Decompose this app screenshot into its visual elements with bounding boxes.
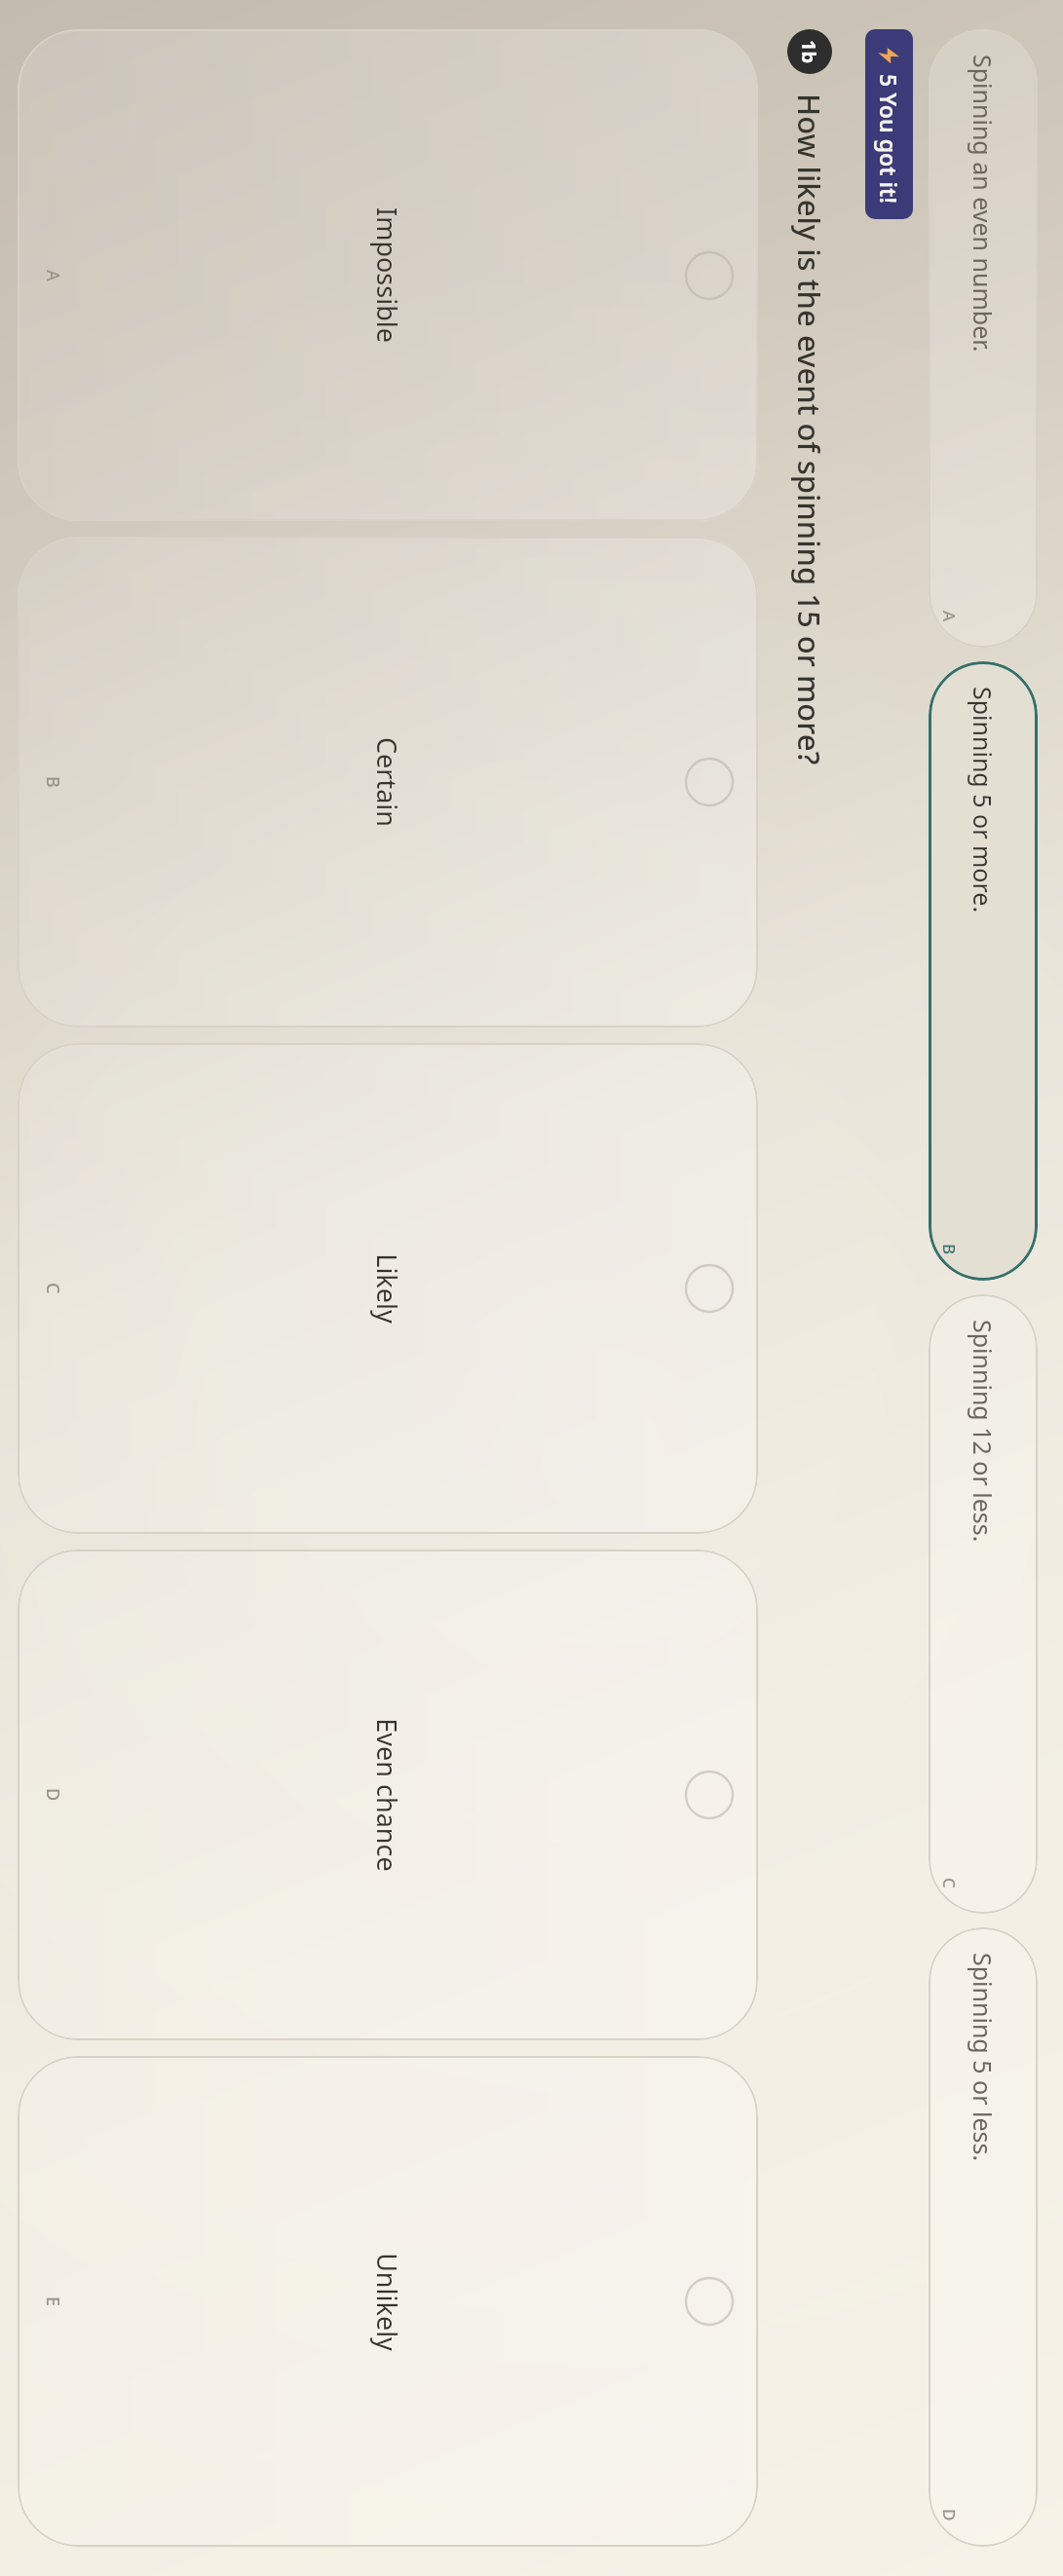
button[interactable]: Likely	[18, 1043, 758, 1534]
staticText: D	[938, 2509, 961, 2521]
staticText: Spinning 5 or less.	[967, 1953, 1000, 2162]
staticText: Impossible	[369, 207, 405, 343]
staticText: Spinning 5 or more.	[967, 687, 1000, 914]
button[interactable]: Spinning an even number.	[929, 29, 1038, 648]
staticText: C	[938, 1878, 961, 1888]
staticText: E	[41, 2296, 65, 2307]
button[interactable]: Unlikely	[18, 2056, 758, 2547]
staticText: C	[41, 1283, 65, 1294]
button[interactable]: 5 You got it!	[865, 29, 913, 219]
staticText: Unlikely	[369, 2253, 405, 2351]
button[interactable]: 1b	[787, 29, 832, 74]
staticText: Certain	[369, 737, 405, 827]
staticText: Spinning 12 or less.	[967, 1320, 1000, 1543]
staticText: Likely	[369, 1253, 405, 1324]
button[interactable]: Spinning 5 or less.	[929, 1927, 1038, 2547]
staticText: How likely is the event of spinning 15 o…	[789, 93, 830, 765]
button[interactable]: Even chance	[18, 1549, 758, 2040]
button[interactable]: Spinning 5 or more.	[929, 661, 1038, 1281]
staticText: 1b	[796, 40, 822, 64]
button[interactable]: Certain	[18, 537, 758, 1027]
staticText: Spinning an even number.	[967, 55, 1000, 353]
staticText: B	[41, 776, 65, 788]
staticText: B	[938, 1244, 961, 1255]
staticText: D	[41, 1788, 65, 1802]
button[interactable]: Impossible	[18, 29, 758, 521]
staticText: Even chance	[369, 1718, 405, 1872]
staticText: 5 You got it!	[874, 74, 904, 204]
staticText: A	[41, 270, 65, 281]
button[interactable]: Spinning 12 or less.	[929, 1294, 1038, 1914]
staticText: A	[938, 611, 961, 622]
